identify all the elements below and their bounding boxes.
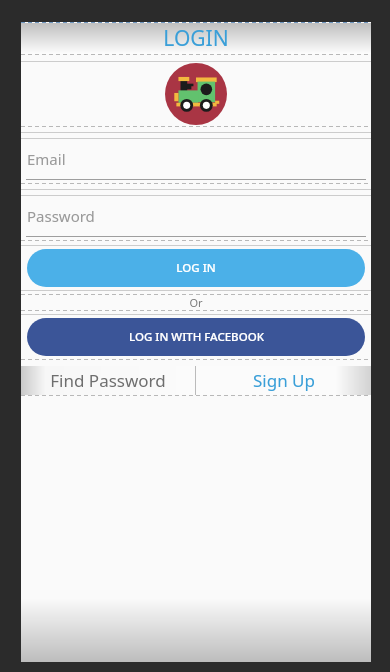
staticText: Or (189, 295, 203, 310)
button[interactable]: Email (27, 139, 371, 179)
button[interactable]: LOG IN WITH FACEBOOK (27, 318, 365, 356)
staticText: LOG IN (176, 260, 216, 276)
button[interactable]: LOG IN (27, 249, 365, 287)
staticText: LOG IN WITH FACEBOOK (129, 329, 264, 345)
staticText: Find Password (50, 369, 166, 392)
button[interactable]: Password (27, 196, 371, 236)
staticText: Sign Up (253, 369, 315, 392)
button[interactable]: Sign Up (196, 366, 371, 395)
staticText: Email (27, 149, 66, 169)
staticText: LOGIN (163, 24, 229, 53)
staticText: Password (27, 206, 95, 226)
button[interactable]: Find Password (21, 366, 195, 395)
